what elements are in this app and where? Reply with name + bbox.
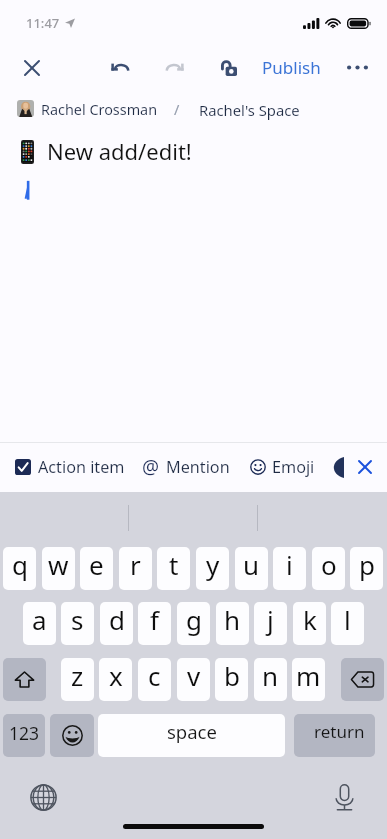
button[interactable]: return	[294, 714, 375, 757]
button[interactable]: y	[196, 547, 229, 590]
button[interactable]: h	[216, 602, 249, 645]
staticText: c	[148, 658, 161, 693]
staticText: z	[71, 658, 84, 693]
staticText: l	[344, 602, 351, 637]
staticText: r	[130, 547, 141, 582]
button[interactable]: i	[273, 547, 306, 590]
button[interactable]: Close keyboard	[352, 449, 378, 485]
staticText: i	[286, 547, 293, 582]
button[interactable]: More options	[336, 46, 378, 89]
button[interactable]: e	[80, 547, 113, 590]
staticText: p	[359, 547, 375, 582]
button[interactable]: Close	[10, 46, 53, 89]
button[interactable]: p	[350, 547, 383, 590]
staticText: d	[109, 602, 125, 637]
button[interactable]: Redo	[153, 46, 196, 89]
button[interactable]: t	[157, 547, 190, 590]
button[interactable]: Emoji	[246, 449, 319, 485]
staticText: j	[267, 602, 274, 637]
staticText: q	[12, 547, 28, 582]
staticText: Rachel Crossman	[41, 100, 158, 120]
staticText: f	[150, 602, 159, 637]
button[interactable]: q	[3, 547, 36, 590]
button[interactable]: u	[235, 547, 268, 590]
staticText: Rachel's Space	[199, 100, 300, 120]
staticText: space	[167, 719, 217, 744]
staticText: n	[262, 658, 279, 693]
button[interactable]: k	[293, 602, 326, 645]
button[interactable]: f	[138, 602, 171, 645]
button[interactable]: b	[215, 658, 248, 701]
button[interactable]: d	[100, 602, 133, 645]
button[interactable]: Publish	[258, 48, 324, 86]
staticText: Mention	[166, 456, 230, 478]
staticText: New add/edit!	[47, 136, 192, 166]
button[interactable]: c	[138, 658, 171, 701]
staticText: Action item	[38, 456, 125, 478]
button[interactable]: Action item	[10, 449, 130, 485]
staticText: @	[142, 454, 160, 480]
button[interactable]: Backspace	[341, 658, 384, 701]
staticText: k	[303, 602, 317, 637]
button[interactable]: 123	[3, 714, 45, 757]
button[interactable]: Emoji keyboard	[50, 714, 94, 757]
button[interactable]: Dictate	[327, 780, 361, 814]
button[interactable]: Unlock	[207, 46, 250, 89]
button[interactable]: g	[177, 602, 210, 645]
staticText: Publish	[262, 56, 321, 79]
staticText: 11:47	[26, 14, 60, 32]
staticText: u	[243, 547, 260, 582]
button[interactable]: l	[331, 602, 364, 645]
staticText: y	[206, 547, 220, 582]
button[interactable]: a	[23, 602, 56, 645]
staticText: b	[224, 658, 240, 693]
button[interactable]: x	[99, 658, 132, 701]
button[interactable]: s	[61, 602, 94, 645]
staticText: 123	[9, 721, 40, 745]
staticText: v	[187, 658, 201, 693]
button[interactable]: Formatting	[327, 449, 353, 485]
button[interactable]: space	[98, 714, 285, 757]
button[interactable]: r	[119, 547, 152, 590]
button[interactable]: m	[292, 658, 325, 701]
staticText: Emoji	[272, 456, 315, 478]
button[interactable]: j	[254, 602, 287, 645]
staticText: /	[174, 100, 180, 120]
button[interactable]: Switch keyboard	[26, 780, 60, 814]
button[interactable]: w	[42, 547, 75, 590]
staticText: a	[32, 602, 47, 637]
staticText: o	[321, 547, 337, 582]
button[interactable]: o	[312, 547, 345, 590]
staticText: t	[169, 547, 179, 582]
staticText: w	[48, 547, 69, 582]
staticText: s	[71, 602, 84, 637]
button[interactable]: @	[138, 449, 234, 485]
button[interactable]: Undo	[98, 46, 141, 89]
staticText: m	[296, 658, 321, 693]
staticText: return	[314, 720, 365, 743]
staticText: g	[186, 602, 202, 637]
button[interactable]: Shift	[3, 658, 46, 701]
button[interactable]: v	[177, 658, 210, 701]
staticText: e	[89, 547, 104, 582]
button[interactable]: n	[254, 658, 287, 701]
staticText: h	[224, 602, 241, 637]
button[interactable]: z	[61, 658, 94, 701]
staticText: x	[109, 658, 123, 693]
